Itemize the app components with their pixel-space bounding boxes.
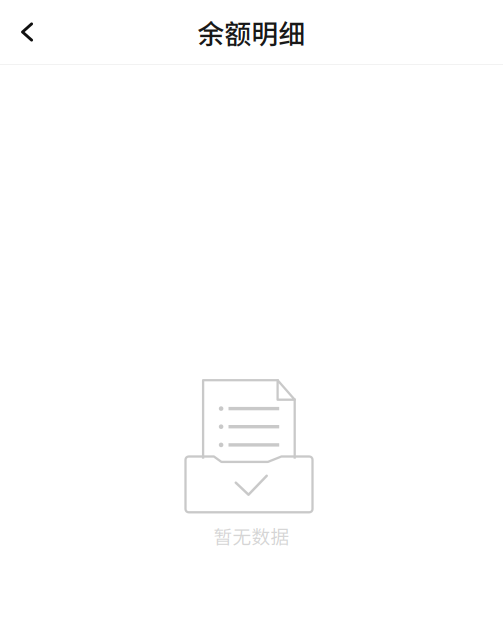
staticText: 余额明细 — [197, 13, 305, 51]
button[interactable]: Back — [0, 6, 56, 58]
staticText: 暂无数据 — [213, 522, 289, 549]
